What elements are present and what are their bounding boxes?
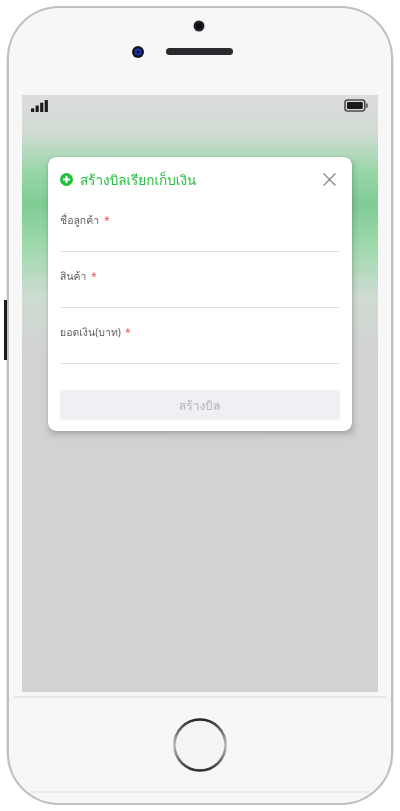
button[interactable]: ชื่อลูกค้า (48, 212, 352, 268)
staticText: * (104, 213, 110, 227)
staticText: สินค้า (60, 268, 87, 285)
staticText: ชื่อลูกค้า (60, 212, 100, 229)
staticText: ยอดเงิน(บาท) (60, 324, 121, 341)
button[interactable]: สินค้า (48, 268, 352, 324)
staticText: สร้างบิล (179, 396, 221, 415)
staticText: สร้างบิลเรียกเก็บเงิน (80, 169, 197, 190)
button[interactable]: สร้างบิล (60, 390, 340, 420)
staticText: * (91, 269, 97, 283)
button[interactable]: ยอดเงิน(บาท) (48, 324, 352, 380)
button[interactable]: Close (316, 166, 342, 192)
staticText: * (125, 325, 131, 339)
